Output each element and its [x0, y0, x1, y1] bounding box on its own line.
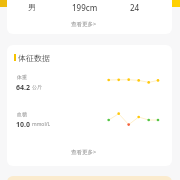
staticText: 24 — [130, 2, 140, 12]
staticText: 公斤 — [32, 84, 42, 90]
staticText: 血糖 — [17, 111, 27, 117]
staticText: 体征数据 — [18, 53, 50, 63]
button[interactable]: 24 — [109, 2, 161, 12]
button[interactable]: 体重 — [7, 70, 172, 100]
button[interactable]: 男 — [7, 2, 58, 12]
staticText: 10.0 — [16, 120, 30, 130]
staticText: 男 — [28, 2, 36, 12]
staticText: 体重 — [17, 74, 27, 80]
staticText: 查看更多> — [71, 148, 97, 156]
staticText: 64.2 — [16, 83, 30, 93]
staticText: 199cm — [72, 2, 98, 12]
staticText: 查看更多> — [71, 20, 97, 28]
staticText: mmol/L — [32, 121, 51, 128]
button[interactable]: 199cm — [59, 2, 111, 12]
button[interactable]: 查看更多> — [58, 19, 110, 28]
button[interactable]: 查看更多> — [58, 147, 110, 156]
button[interactable]: 血糖 — [7, 107, 172, 137]
